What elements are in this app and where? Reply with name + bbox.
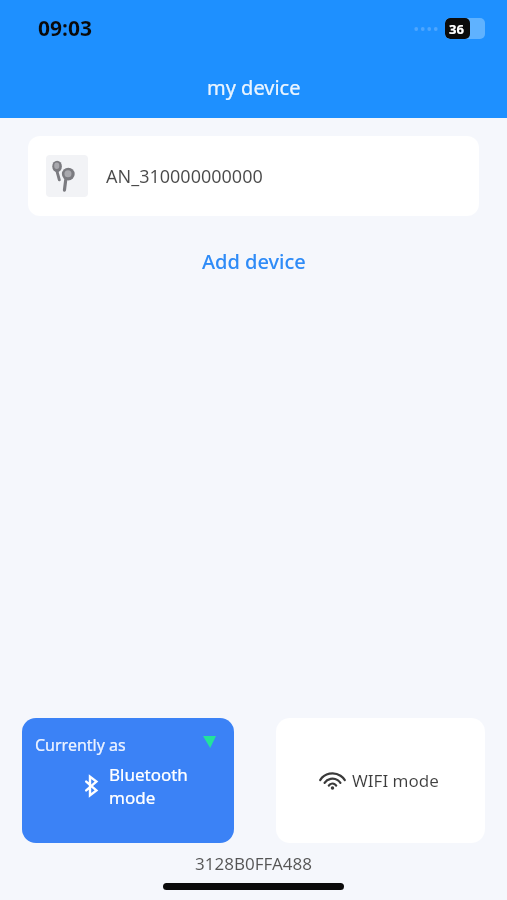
staticText: 3128B0FFA488 — [0, 852, 507, 875]
staticText: my device — [207, 74, 301, 101]
staticText: AN_310000000000 — [106, 164, 263, 189]
button[interactable]: WIFI — [276, 718, 485, 843]
staticText: 09:03 — [38, 14, 92, 43]
button[interactable]: AN_310000000000 — [28, 136, 479, 216]
other: WIFI — [322, 770, 343, 791]
other: Bluetooth — [80, 776, 100, 796]
staticText: WIFI mode — [352, 769, 439, 792]
staticText: Currently as — [35, 734, 126, 756]
staticText: 36 — [449, 20, 464, 38]
button[interactable]: Add device — [188, 242, 320, 281]
staticText: Bluetooth mode — [109, 763, 234, 809]
staticText: Add device — [202, 248, 306, 275]
button[interactable]: Currently as — [22, 718, 234, 843]
